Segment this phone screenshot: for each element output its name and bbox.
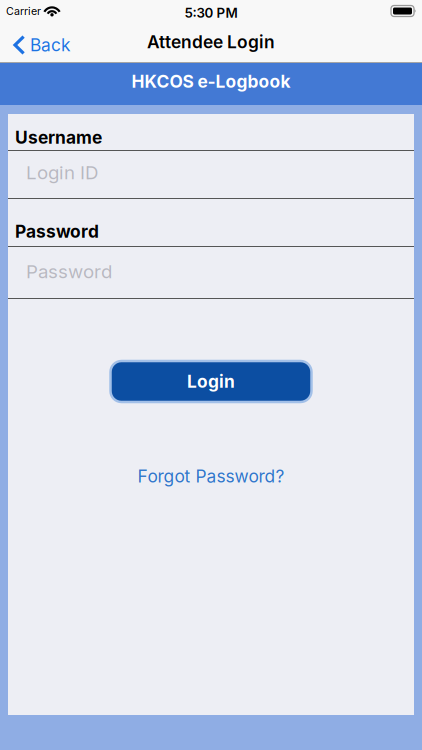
staticText: Password: [15, 221, 99, 242]
staticText: Login: [187, 371, 235, 392]
button[interactable]: Forgot Password?: [137, 466, 284, 486]
button[interactable]: Password: [8, 247, 414, 298]
staticText: HKCOS e-Logbook: [131, 71, 290, 92]
button[interactable]: Login: [110, 361, 311, 402]
button[interactable]: Back: [13, 35, 71, 55]
staticText: Forgot Password?: [137, 466, 284, 486]
staticText: Attendee Login: [147, 32, 275, 52]
staticText: Carrier: [6, 5, 41, 17]
staticText: 5:30 PM: [184, 5, 237, 21]
staticText: Back: [30, 35, 71, 55]
staticText: Password: [26, 260, 112, 282]
button[interactable]: Login ID: [8, 151, 414, 198]
staticText: Username: [15, 127, 102, 148]
staticText: Login ID: [26, 161, 98, 183]
